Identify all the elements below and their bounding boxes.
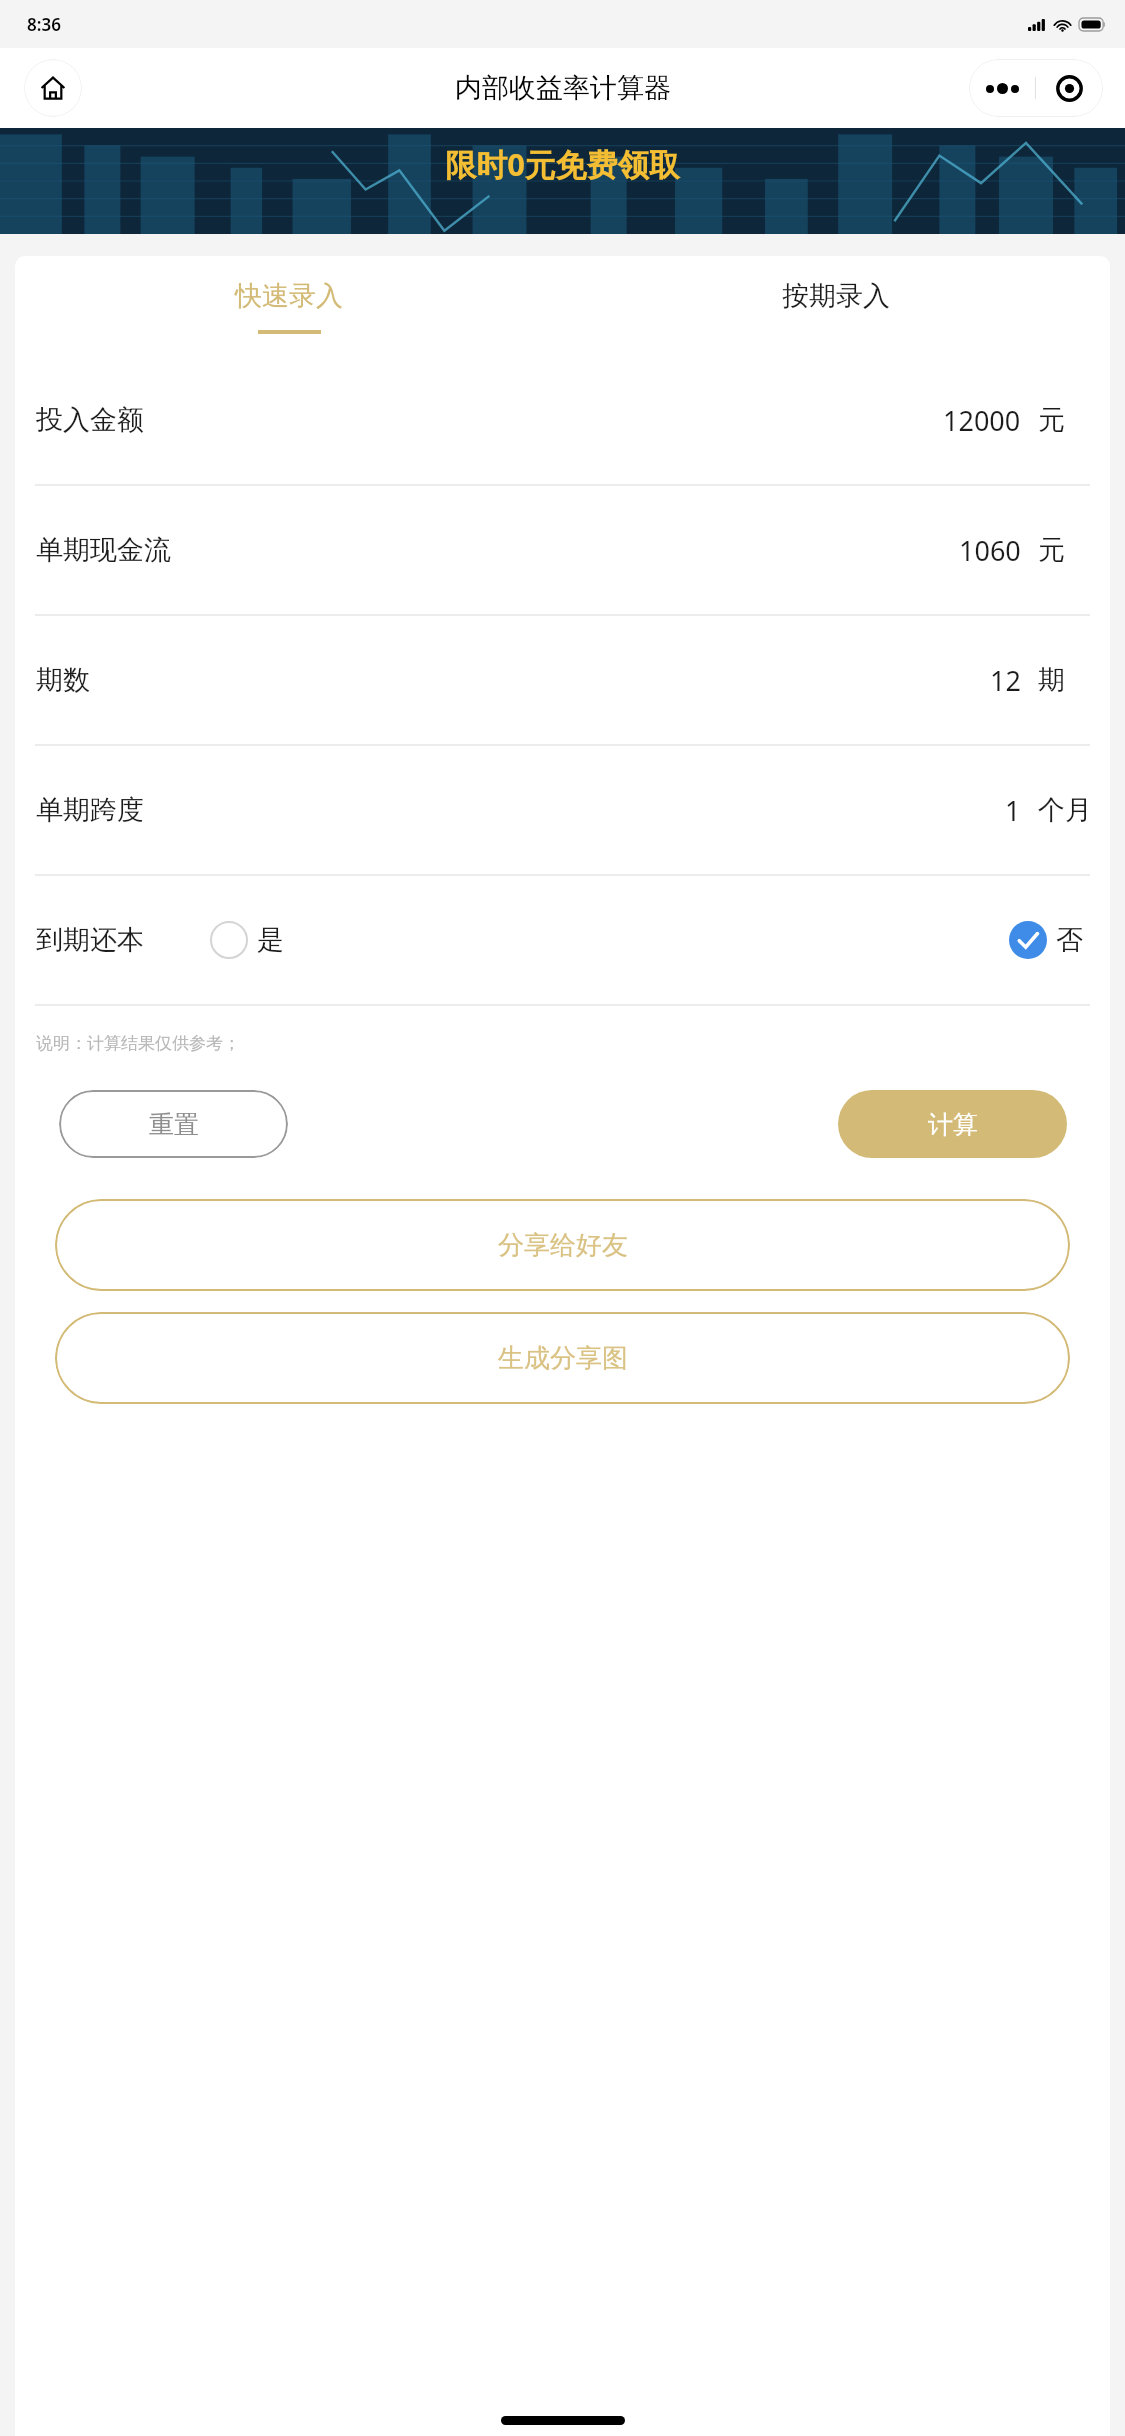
- button[interactable]: 按期录入: [562, 256, 1110, 356]
- staticText: 快速录入: [235, 279, 343, 313]
- button[interactable]: Home: [24, 59, 82, 117]
- button[interactable]: 分享给好友: [55, 1199, 1070, 1291]
- staticText: 单期跨度: [36, 793, 144, 827]
- staticText: 是: [257, 923, 284, 957]
- button[interactable]: 投入金额: [33, 356, 1092, 484]
- staticText: 1: [1005, 792, 1021, 829]
- staticText: 元: [1038, 403, 1065, 437]
- staticText: 说明：计算结果仅供参考；: [36, 1033, 240, 1054]
- staticText: 个月: [1038, 793, 1092, 827]
- button[interactable]: 是: [210, 921, 284, 959]
- button[interactable]: 单期跨度: [33, 746, 1092, 874]
- staticText: 12: [990, 662, 1021, 699]
- staticText: 分享给好友: [498, 1229, 628, 1262]
- button[interactable]: More: [969, 59, 1035, 117]
- staticText: 元: [1038, 533, 1065, 567]
- staticText: 1060: [959, 532, 1021, 569]
- button[interactable]: 否: [1009, 921, 1083, 959]
- staticText: 单期现金流: [36, 533, 171, 567]
- staticText: 8:36: [27, 13, 61, 36]
- button[interactable]: Close: [1036, 59, 1103, 117]
- button[interactable]: 计算: [838, 1090, 1067, 1158]
- button[interactable]: 生成分享图: [55, 1312, 1070, 1404]
- staticText: 生成分享图: [498, 1342, 628, 1375]
- staticText: 12000: [943, 402, 1021, 439]
- staticText: 期数: [36, 663, 90, 697]
- staticText: 计算: [928, 1109, 978, 1140]
- staticText: 内部收益率计算器: [455, 71, 671, 105]
- staticText: 限时0元免费领取: [445, 143, 680, 185]
- staticText: 到期还本: [36, 923, 144, 957]
- staticText: 按期录入: [782, 279, 890, 313]
- button[interactable]: 期数: [33, 616, 1092, 744]
- button[interactable]: 快速录入: [15, 256, 562, 356]
- staticText: 期: [1038, 663, 1065, 697]
- button[interactable]: 单期现金流: [33, 486, 1092, 614]
- staticText: 重置: [149, 1109, 199, 1140]
- staticText: 否: [1056, 923, 1083, 957]
- staticText: 投入金额: [36, 403, 144, 437]
- button[interactable]: 重置: [59, 1090, 288, 1158]
